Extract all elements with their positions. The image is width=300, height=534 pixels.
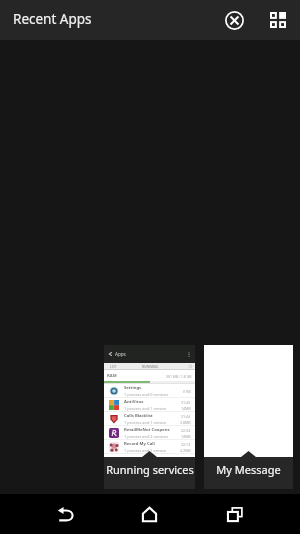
staticText: Recent Apps: [13, 10, 92, 28]
staticText: 1 process and 1 service: [124, 448, 167, 453]
staticText: RUNNING: [142, 364, 158, 369]
staticText: Calls Blacklist: [124, 413, 153, 419]
staticText: Record My Call: [124, 441, 155, 447]
staticText: AntiVirus: [124, 399, 144, 405]
staticText: RetailMeNot Coupons: [124, 427, 170, 433]
staticText: Running services: [106, 462, 194, 477]
staticText: 361 MB / 1.8 GB: [166, 374, 192, 379]
button[interactable]: Back: [36, 494, 93, 534]
staticText: 14MB: [181, 406, 191, 411]
staticText: 1 process and 1 service: [124, 406, 167, 411]
button[interactable]: My Message: [204, 345, 293, 489]
button[interactable]: Apps: [104, 345, 195, 489]
staticText: 0 KB: [183, 389, 191, 394]
staticText: Settings: [124, 385, 142, 391]
staticText: Apps: [115, 351, 126, 357]
staticText: 1 process and 1 service: [124, 420, 167, 425]
staticText: 22:34: [181, 428, 191, 433]
button[interactable]: Home: [121, 494, 178, 534]
button[interactable]: Recent apps: [206, 494, 263, 534]
staticText: LIST: [110, 364, 117, 369]
staticText: 22:12: [181, 442, 191, 447]
button[interactable]: Grid view: [258, 0, 298, 40]
staticText: 1 process and 2 services: [124, 434, 169, 439]
staticText: 21:44: [181, 414, 191, 419]
staticText: My Message: [216, 462, 281, 477]
staticText: 21:45: [181, 400, 191, 405]
staticText: 4.2MB: [180, 448, 191, 453]
staticText: 14MB: [181, 434, 191, 439]
staticText: 1 process and 0 services: [124, 392, 169, 397]
staticText: RAM: [107, 373, 117, 379]
button[interactable]: Clear all: [214, 0, 254, 40]
staticText: 3.8MB: [180, 420, 191, 425]
